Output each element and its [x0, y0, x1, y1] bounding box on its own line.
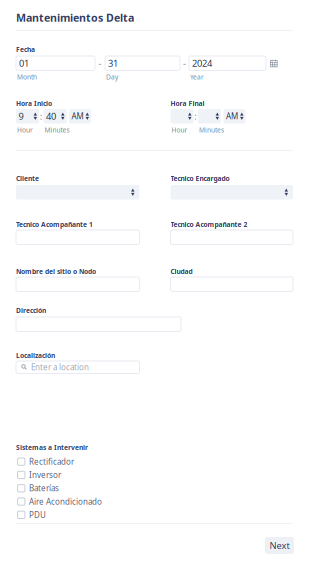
staticText: Localización [16, 351, 55, 360]
staticText: 01 [19, 57, 29, 69]
button[interactable]: Next [265, 537, 294, 554]
staticText: Minutes [199, 125, 224, 134]
staticText: Sistemas a Intervenir [16, 443, 88, 452]
staticText: Minutes [44, 125, 69, 134]
button[interactable]: 2024 [189, 56, 266, 70]
staticText: Inversor [29, 470, 61, 480]
staticText: : [40, 110, 43, 122]
staticText: Enter a location [31, 362, 89, 372]
button[interactable]: Enter a location [16, 361, 139, 373]
button[interactable]: AM [69, 109, 91, 123]
staticText: Month [17, 72, 37, 81]
staticText: Tecnico Acompañante 1 [16, 220, 93, 229]
button[interactable] [16, 317, 181, 331]
button[interactable] [198, 109, 221, 123]
staticText: Hour [17, 125, 33, 134]
staticText: Hora Final [170, 99, 204, 108]
button[interactable] [16, 185, 139, 199]
staticText: Cliente [16, 174, 39, 183]
staticText: Tecnico Encargado [170, 174, 229, 183]
staticText: 31 [108, 57, 118, 69]
staticText: - [183, 57, 186, 69]
button[interactable] [170, 109, 193, 123]
staticText: AM [71, 111, 83, 121]
staticText: Next [269, 539, 289, 552]
staticText: Hour [171, 125, 187, 134]
staticText: Day [106, 72, 118, 81]
button[interactable] [170, 277, 293, 291]
staticText: Hora Inicio [16, 99, 52, 108]
staticText: Year [190, 72, 204, 81]
staticText: Fecha [16, 45, 35, 54]
button[interactable] [16, 277, 139, 291]
staticText: Baterías [29, 483, 59, 493]
button[interactable]: 40 [43, 109, 66, 123]
button[interactable] [16, 230, 139, 244]
staticText: Ciudad [170, 267, 192, 276]
button[interactable]: AM [223, 109, 245, 123]
button[interactable]: Baterías [16, 482, 136, 495]
staticText: Aire Acondicionado [29, 496, 102, 507]
staticText: Rectificador [29, 456, 74, 467]
staticText: 9 [18, 110, 23, 122]
button[interactable]: Choose date [270, 59, 278, 67]
button[interactable]: Aire Acondicionado [16, 495, 136, 508]
staticText: 40 [46, 110, 56, 122]
staticText: PDU [29, 509, 46, 520]
button[interactable]: 31 [105, 56, 180, 70]
staticText: Dirección [16, 306, 46, 315]
staticText: : [194, 110, 197, 122]
button[interactable] [170, 185, 293, 199]
staticText: - [98, 57, 101, 69]
button[interactable]: 01 [16, 56, 95, 70]
button[interactable]: Inversor [16, 468, 136, 482]
button[interactable]: PDU [16, 508, 136, 521]
staticText: Tecnico Acompañante 2 [170, 220, 247, 229]
staticText: 2024 [192, 57, 212, 69]
button[interactable] [170, 230, 293, 244]
button[interactable]: 9 [16, 109, 39, 123]
staticText: AM [226, 111, 238, 121]
button[interactable]: Rectificador [16, 455, 136, 468]
staticText: Nombre del sitio o Nodo [16, 267, 96, 276]
staticText: Mantenimientos Delta [16, 10, 134, 25]
